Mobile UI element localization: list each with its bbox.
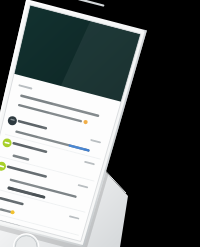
button[interactable]: Chat app shown on a white smartphone — [0, 0, 200, 247]
